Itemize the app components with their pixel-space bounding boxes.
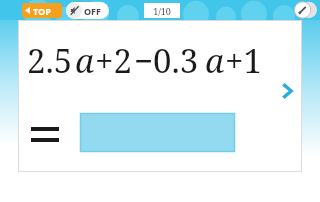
button[interactable]: Next (274, 78, 300, 104)
button[interactable]: Edit (292, 1, 318, 19)
staticText: +1 (225, 38, 262, 83)
staticText: +2 (95, 38, 132, 83)
staticText: a (75, 38, 95, 83)
staticText: −0.3 (134, 38, 199, 83)
button[interactable]: Sound off (66, 2, 109, 19)
staticText: 1/10 (153, 5, 171, 17)
staticText: a (205, 38, 225, 83)
staticText: OFF (84, 5, 102, 17)
button[interactable]: 1/10 (144, 3, 180, 18)
staticText: TOP (33, 5, 51, 17)
button[interactable]: Answer input (80, 113, 235, 152)
button[interactable]: TOP (22, 3, 62, 18)
staticText: 2.5 (27, 38, 73, 83)
